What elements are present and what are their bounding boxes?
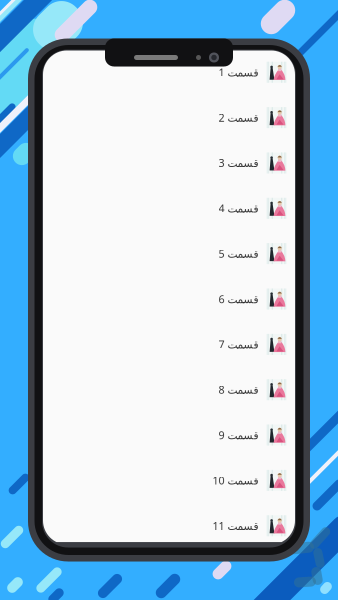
- staticText: قسمت 9: [218, 428, 258, 442]
- button[interactable]: قسمت 1: [43, 50, 295, 95]
- button[interactable]: قسمت 6: [43, 276, 295, 322]
- button[interactable]: قسمت 9: [43, 412, 295, 458]
- staticText: قسمت 6: [218, 292, 258, 306]
- button[interactable]: قسمت 2: [43, 95, 295, 140]
- staticText: قسمت 3: [218, 156, 258, 170]
- staticText: قسمت 8: [218, 383, 258, 397]
- button[interactable]: قسمت 8: [43, 367, 295, 412]
- staticText: قسمت 7: [218, 337, 258, 351]
- button[interactable]: قسمت 4: [43, 186, 295, 231]
- staticText: قسمت 2: [218, 110, 258, 125]
- button[interactable]: قسمت 3: [43, 140, 295, 186]
- staticText: قسمت 11: [212, 519, 258, 533]
- staticText: قسمت 1: [218, 65, 258, 79]
- button[interactable]: قسمت 11: [43, 503, 295, 548]
- button[interactable]: قسمت 10: [43, 458, 295, 503]
- button[interactable]: قسمت 7: [43, 322, 295, 367]
- staticText: قسمت 4: [218, 201, 258, 215]
- staticText: قسمت 5: [218, 247, 258, 261]
- staticText: قسمت 10: [212, 473, 258, 487]
- button[interactable]: قسمت 5: [43, 231, 295, 276]
